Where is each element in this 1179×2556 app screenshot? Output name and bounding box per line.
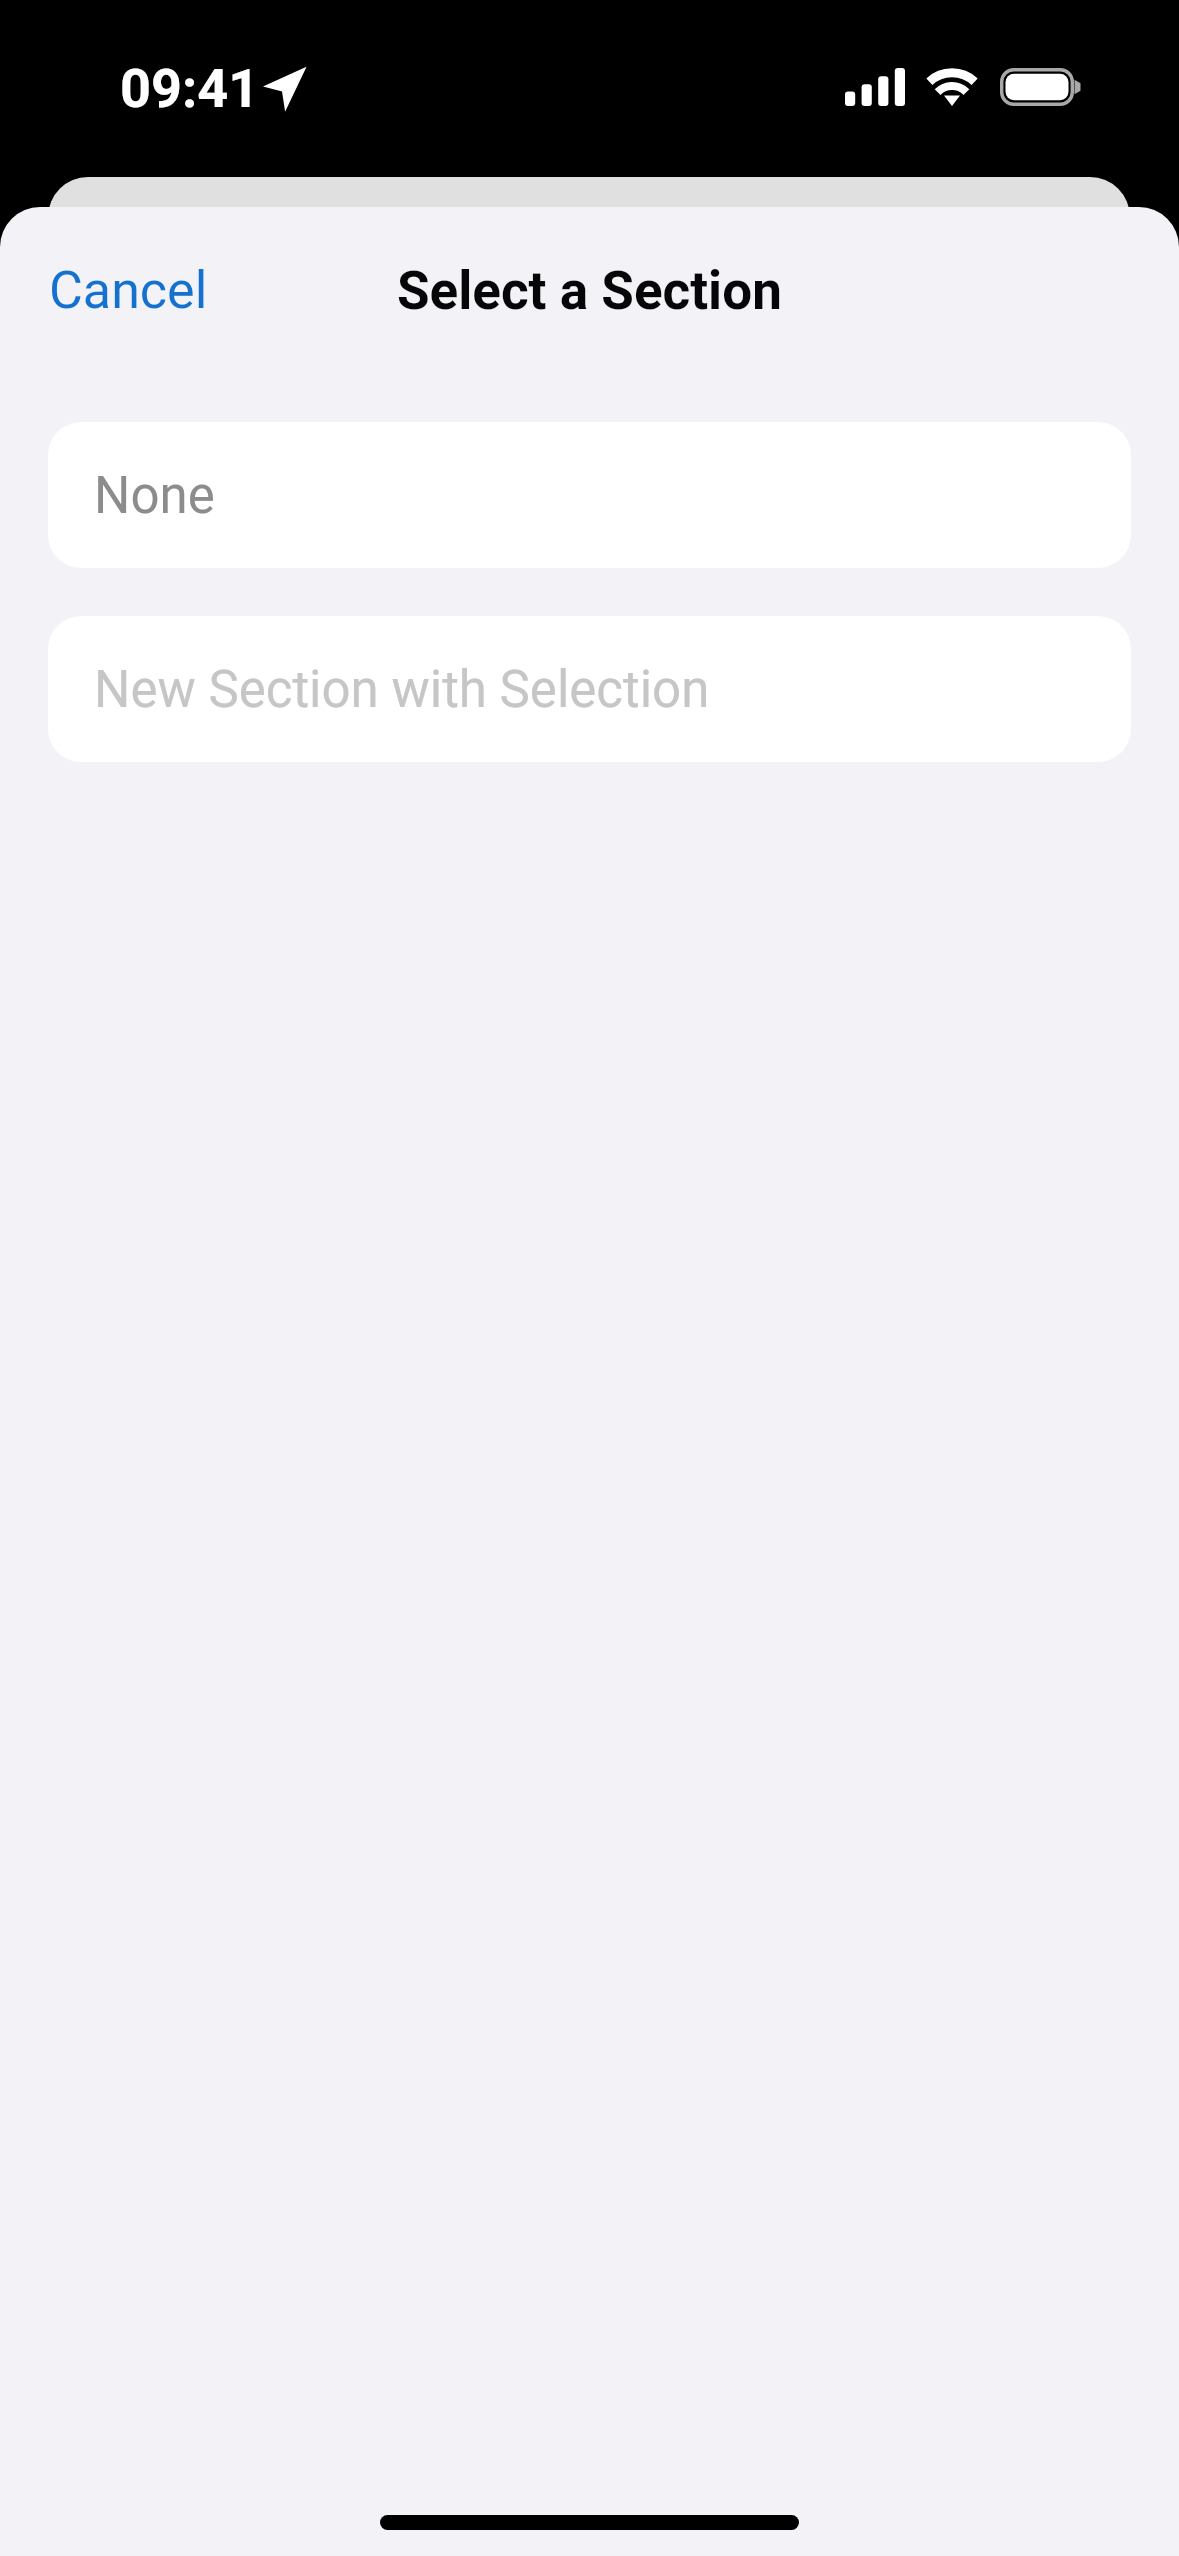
button[interactable]: None: [48, 422, 1131, 568]
staticText: None: [94, 466, 215, 526]
staticText: Select a Section: [397, 260, 782, 322]
other: Location services active: [265, 68, 307, 109]
other: Cellular signal: [845, 68, 905, 106]
other: Battery full: [1000, 68, 1082, 107]
button[interactable]: New Section with Selection: [48, 616, 1131, 762]
button[interactable]: Cancel: [0, 240, 248, 341]
staticText: 09:41: [120, 57, 260, 120]
staticText: Cancel: [49, 260, 208, 321]
staticText: New Section with Selection: [94, 660, 710, 720]
other: Wi-Fi: [926, 68, 978, 108]
